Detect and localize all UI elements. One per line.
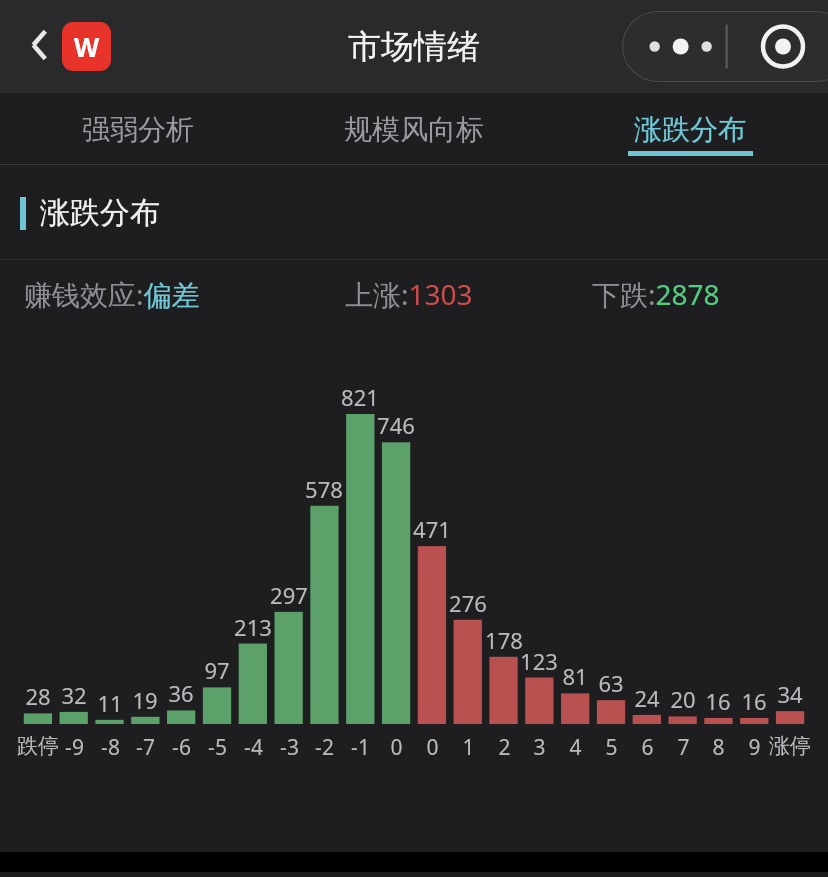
staticText: 强弱分析 [82, 112, 194, 147]
staticText: -1 [351, 733, 370, 762]
button[interactable]: 强弱分析 [0, 93, 276, 165]
staticText: 297 [270, 580, 308, 610]
staticText: 市场情绪 [348, 26, 480, 68]
staticText: 471 [413, 514, 451, 544]
staticText: -9 [65, 733, 84, 762]
staticText: 5 [605, 733, 618, 762]
staticText: 97 [204, 655, 230, 685]
staticText: -3 [280, 733, 299, 762]
staticText: 上涨:1303 [345, 275, 473, 313]
staticText: 24 [634, 683, 660, 713]
staticText: 20 [670, 684, 696, 714]
staticText: 涨跌分布 [634, 112, 746, 147]
staticText: 16 [741, 686, 767, 716]
staticText: 涨跌分布 [40, 194, 160, 232]
staticText: 34 [777, 679, 803, 709]
staticText: 213 [234, 612, 272, 642]
staticText: 9 [748, 733, 761, 762]
staticText: 578 [305, 474, 343, 504]
staticText: 63 [598, 668, 624, 698]
staticText: 8 [712, 733, 725, 762]
staticText: 746 [377, 410, 415, 440]
button[interactable]: 涨跌分布 [552, 93, 828, 165]
staticText: 821 [341, 382, 379, 412]
staticText: 0 [426, 733, 439, 762]
staticText: 2 [498, 733, 511, 762]
staticText: 6 [641, 733, 654, 762]
staticText: 规模风向标 [344, 112, 484, 147]
staticText: -8 [101, 733, 120, 762]
button[interactable]: Wind [62, 22, 111, 71]
staticText: 下跌:2878 [592, 275, 720, 313]
button[interactable]: 规模风向标 [276, 93, 552, 165]
staticText: 178 [485, 625, 523, 655]
staticText: 涨停 [769, 733, 811, 759]
staticText: 7 [677, 733, 690, 762]
staticText: 0 [390, 733, 403, 762]
staticText: 19 [132, 685, 158, 715]
staticText: 11 [97, 688, 123, 718]
staticText: 16 [705, 686, 731, 716]
staticText: -7 [136, 733, 155, 762]
staticText: 28 [25, 681, 51, 711]
button[interactable]: Back [14, 22, 60, 68]
staticText: 32 [61, 680, 87, 710]
staticText: 赚钱效应:偏差 [24, 275, 200, 313]
staticText: 4 [569, 733, 582, 762]
staticText: 36 [168, 678, 194, 708]
staticText: 3 [533, 733, 546, 762]
staticText: 1 [462, 733, 475, 762]
staticText: -6 [172, 733, 191, 762]
staticText: -5 [208, 733, 227, 762]
staticText: 276 [449, 588, 487, 618]
staticText: -4 [244, 733, 263, 762]
staticText: 跌停 [17, 733, 59, 759]
staticText: 123 [520, 646, 558, 676]
staticText: -2 [315, 733, 334, 762]
staticText: 81 [562, 661, 588, 691]
staticText: W [74, 29, 100, 64]
